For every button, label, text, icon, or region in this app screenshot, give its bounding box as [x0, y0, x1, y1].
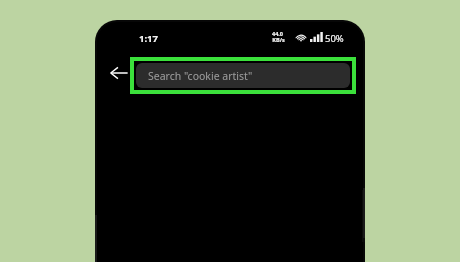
button[interactable]: Search "cookie artist"	[130, 57, 356, 94]
staticText: KB/s	[272, 36, 285, 43]
staticText: Search "cookie artist"	[148, 69, 253, 83]
staticText: 1:17	[139, 32, 158, 45]
button[interactable]: Back	[105, 58, 133, 88]
staticText: 44.0	[272, 30, 283, 37]
staticText: 50%	[325, 32, 344, 45]
